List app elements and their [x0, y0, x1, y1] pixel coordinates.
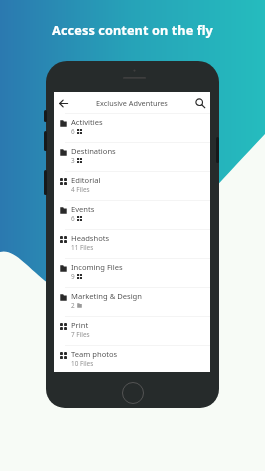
staticText: 2 [71, 301, 75, 310]
button[interactable]: Headshots [54, 229, 210, 258]
staticText: Destinations [71, 146, 116, 156]
button[interactable]: Back [55, 95, 71, 111]
staticText: Marketing & Design [71, 291, 142, 301]
staticText: Print [71, 320, 89, 330]
staticText: Incoming Files [71, 262, 123, 272]
staticText: Exclusive Adventures [96, 98, 168, 108]
staticText: 9 [71, 272, 75, 281]
staticText: 6 [71, 214, 75, 223]
staticText: Activities [71, 117, 103, 127]
staticText: Events [71, 204, 95, 214]
staticText: 4 Files [71, 185, 90, 194]
staticText: 10 Files [71, 359, 94, 368]
staticText: Editorial [71, 175, 101, 185]
button[interactable]: Editorial [54, 171, 210, 200]
button[interactable]: Activities [54, 113, 210, 142]
button[interactable]: Destinations [54, 142, 210, 171]
staticText: Access content on the fly [52, 21, 213, 38]
staticText: 11 Files [71, 243, 94, 252]
staticText: Team photos [71, 349, 118, 359]
button[interactable]: Print [54, 316, 210, 345]
button[interactable]: Search [192, 95, 208, 111]
button[interactable]: Events [54, 200, 210, 229]
button[interactable]: Team photos [54, 345, 210, 372]
button[interactable]: Incoming Files [54, 258, 210, 287]
button[interactable]: Marketing & Design [54, 287, 210, 316]
staticText: 7 Files [71, 330, 90, 339]
staticText: Headshots [71, 233, 110, 243]
staticText: 6 [71, 127, 75, 136]
staticText: 3 [71, 156, 75, 165]
